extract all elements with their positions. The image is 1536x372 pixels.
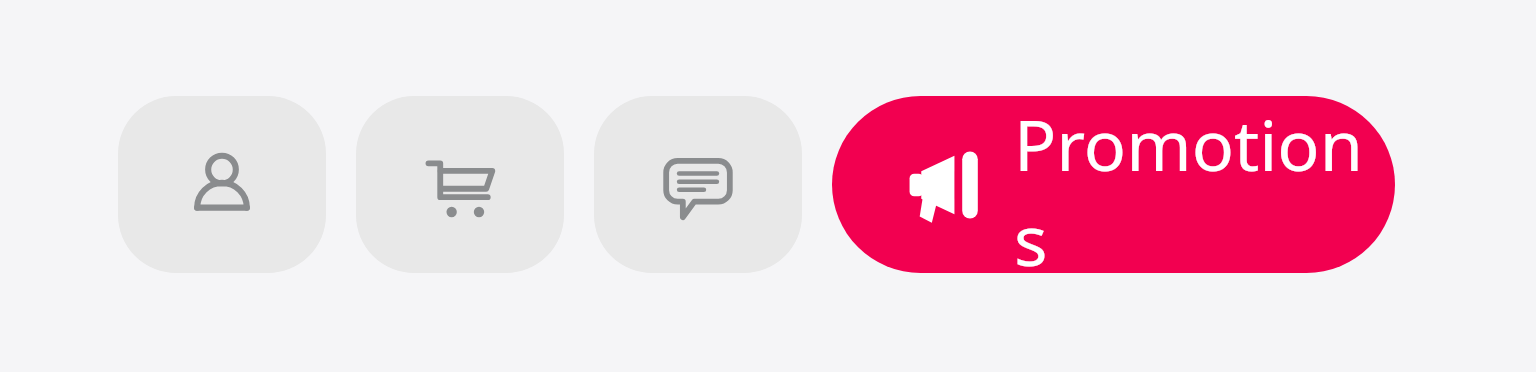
button[interactable]: Messages — [594, 96, 802, 273]
button[interactable]: Account — [118, 96, 326, 273]
staticText: Promotions — [1014, 96, 1395, 273]
button[interactable]: Shopping cart — [356, 96, 564, 273]
button[interactable]: Promotions — [832, 96, 1395, 273]
